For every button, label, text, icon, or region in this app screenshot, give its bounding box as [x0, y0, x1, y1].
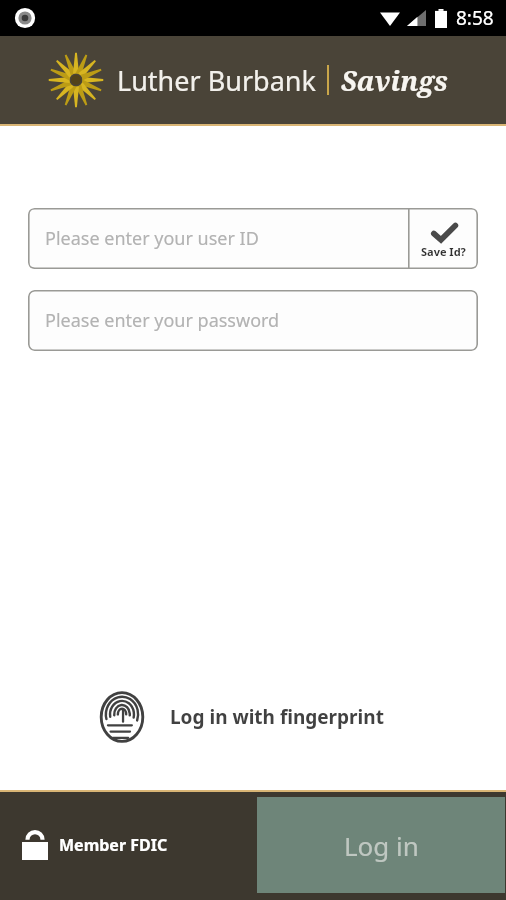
- staticText: Please enter your password: [45, 308, 280, 333]
- staticText: Log in: [344, 828, 419, 863]
- button[interactable]: Save Id: [408, 208, 478, 269]
- staticText: Please enter your user ID: [45, 226, 259, 251]
- button[interactable]: Please enter your password: [28, 290, 478, 351]
- button[interactable]: Please enter your user ID: [28, 208, 408, 269]
- staticText: Log in with fingerprint: [170, 704, 384, 730]
- staticText: Save Id?: [421, 244, 466, 259]
- staticText: 8:58: [456, 5, 494, 31]
- button[interactable]: Log in: [257, 797, 505, 893]
- staticText: Savings: [341, 62, 448, 99]
- button[interactable]: Log in with fingerprint: [96, 680, 384, 754]
- button[interactable]: Member FDIC: [22, 830, 168, 860]
- staticText: Member FDIC: [59, 834, 168, 856]
- staticText: Luther Burbank: [117, 62, 316, 99]
